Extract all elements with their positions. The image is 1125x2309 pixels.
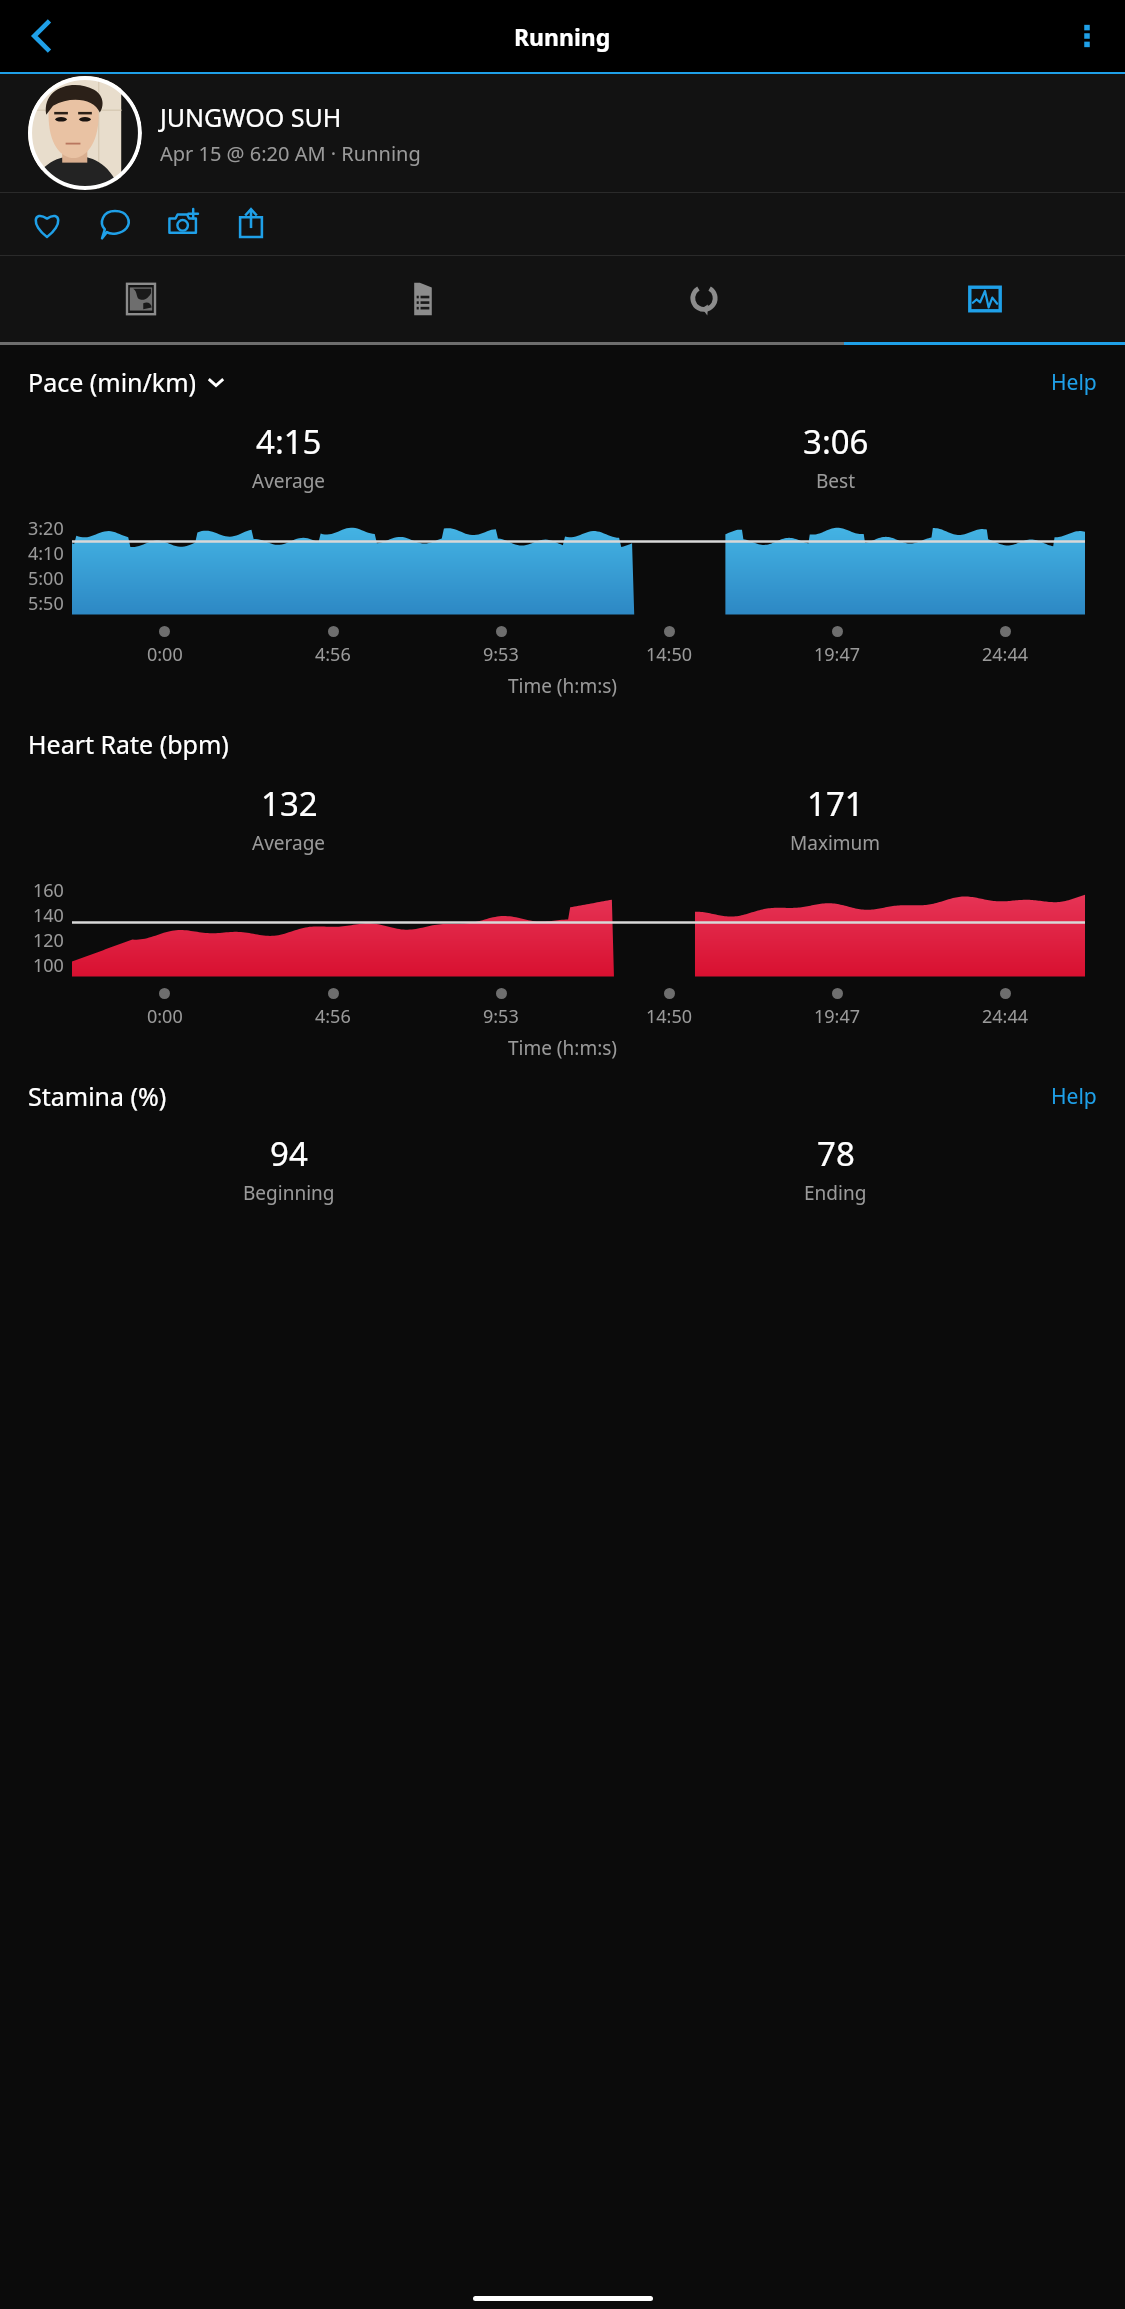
staticText: Help <box>1051 1082 1097 1111</box>
staticText: Average <box>252 830 326 856</box>
staticText: 4:56 <box>315 642 351 667</box>
staticText: 9:53 <box>483 642 519 667</box>
staticText: 3:06 <box>803 419 869 464</box>
button[interactable]: Map <box>0 256 282 342</box>
staticText: Maximum <box>790 830 881 856</box>
staticText: 24:44 <box>982 1004 1029 1029</box>
staticText: Best <box>816 468 856 494</box>
staticText: 19:47 <box>814 642 861 667</box>
staticText: 24:44 <box>982 642 1029 667</box>
staticText: 14:50 <box>646 642 693 667</box>
button[interactable]: Laps <box>563 256 844 342</box>
staticText: 4:56 <box>315 1004 351 1029</box>
staticText: 5:50 <box>28 591 64 616</box>
staticText: 132 <box>261 781 318 826</box>
staticText: 140 <box>33 903 64 928</box>
staticText: 14:50 <box>646 1004 693 1029</box>
staticText: Beginning <box>243 1180 335 1206</box>
button[interactable]: Help <box>1051 1082 1097 1111</box>
staticText: 160 <box>33 878 64 903</box>
staticText: Average <box>252 468 326 494</box>
staticText: 100 <box>33 953 64 978</box>
staticText: JUNGWOO SUH <box>160 100 342 134</box>
button[interactable]: Back <box>14 10 66 62</box>
staticText: Help <box>1051 368 1097 397</box>
staticText: 78 <box>817 1131 855 1176</box>
staticText: 19:47 <box>814 1004 861 1029</box>
staticText: Apr 15 @ 6:20 AM · Running <box>160 140 421 167</box>
button[interactable]: More options <box>1063 12 1111 60</box>
staticText: Ending <box>804 1180 867 1206</box>
button[interactable]: Details <box>282 256 563 342</box>
staticText: Time (h:m:s) <box>0 1035 1125 1061</box>
staticText: 9:53 <box>483 1004 519 1029</box>
button[interactable]: Comment <box>92 201 138 247</box>
button[interactable]: Charts <box>844 256 1125 342</box>
staticText: Stamina (%) <box>28 1079 167 1113</box>
staticText: 4:10 <box>28 541 64 566</box>
button[interactable]: Add photo <box>160 201 206 247</box>
staticText: 0:00 <box>147 642 183 667</box>
button[interactable]: Help <box>1051 368 1097 397</box>
button[interactable]: Stamina (%) <box>28 1079 167 1113</box>
staticText: Pace (min/km) <box>28 365 197 399</box>
button[interactable]: JUNGWOO SUH <box>0 74 1125 192</box>
button[interactable]: Share <box>228 201 274 247</box>
staticText: Running <box>514 21 611 52</box>
staticText: 5:00 <box>28 566 64 591</box>
staticText: Time (h:m:s) <box>0 673 1125 699</box>
staticText: 4:15 <box>256 419 322 464</box>
staticText: 3:20 <box>28 516 64 541</box>
staticText: 171 <box>807 781 864 826</box>
button[interactable]: Like <box>24 201 70 247</box>
staticText: 120 <box>33 928 64 953</box>
staticText: 0:00 <box>147 1004 183 1029</box>
button[interactable]: Pace (min/km) <box>28 365 225 399</box>
button[interactable]: Heart Rate (bpm) <box>28 727 229 761</box>
staticText: 94 <box>270 1131 308 1176</box>
staticText: Heart Rate (bpm) <box>28 727 229 761</box>
